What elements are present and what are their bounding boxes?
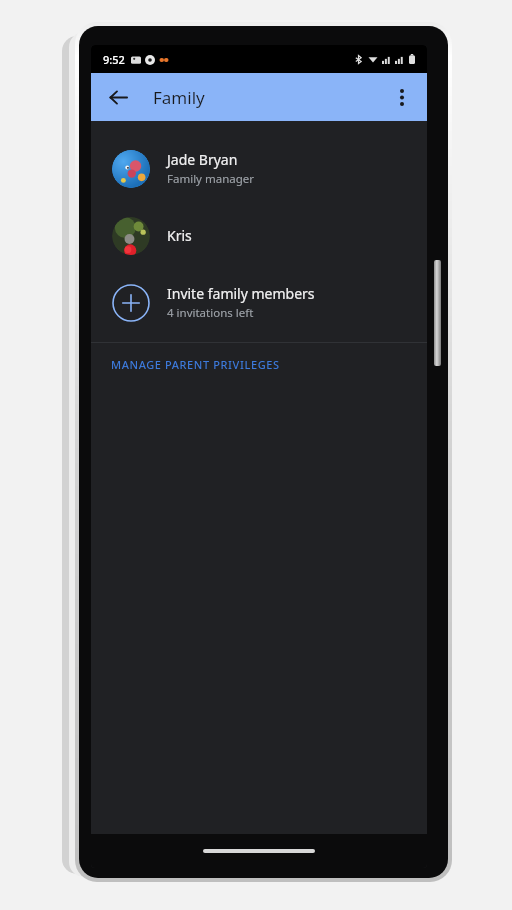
button[interactable]: MANAGE PARENT PRIVILEGES	[91, 343, 427, 386]
staticText: 9:52	[103, 52, 125, 67]
staticText: Jade Bryan	[167, 150, 238, 169]
button[interactable]: Kris	[91, 202, 427, 269]
button[interactable]: Invite family members	[91, 269, 427, 336]
button[interactable]: More options	[383, 78, 421, 116]
staticText: Invite family members	[167, 284, 315, 303]
button[interactable]: Back	[99, 78, 137, 116]
staticText: Family manager	[167, 171, 255, 187]
staticText: Kris	[167, 226, 192, 245]
staticText: MANAGE PARENT PRIVILEGES	[111, 357, 280, 372]
other: Invite family members	[112, 284, 150, 322]
button[interactable]: Jade Bryan	[91, 135, 427, 202]
staticText: 4 invitations left	[167, 305, 254, 321]
staticText: Family	[153, 86, 205, 109]
